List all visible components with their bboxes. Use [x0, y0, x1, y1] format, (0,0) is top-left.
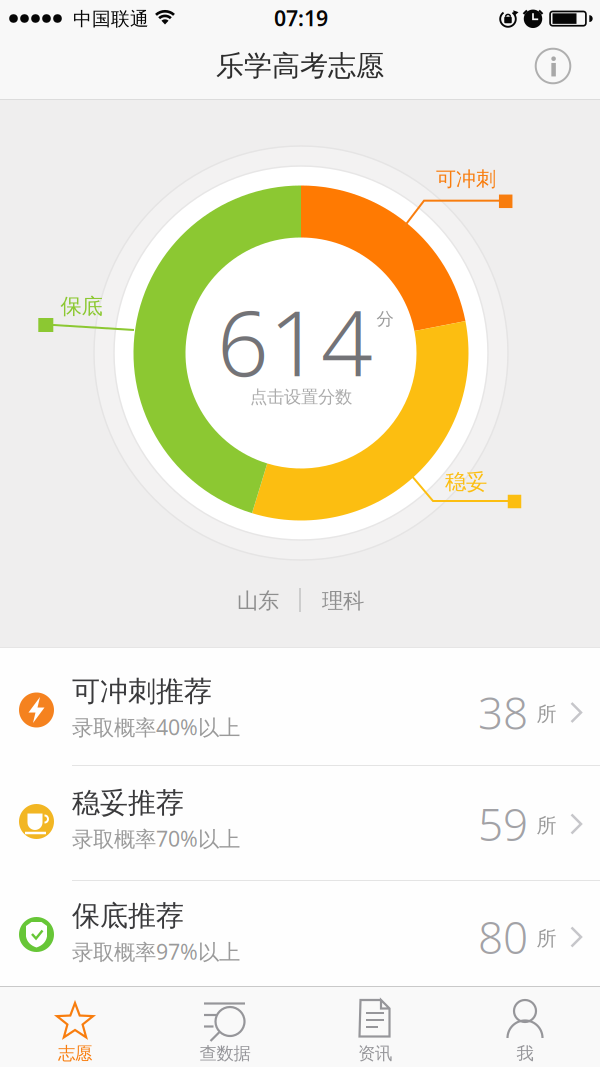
- staticText: 所: [536, 813, 556, 838]
- button[interactable]: 查数据: [150, 987, 300, 1067]
- staticText: 38: [478, 683, 528, 742]
- staticText: 资讯: [358, 1043, 392, 1064]
- staticText: 理科: [322, 588, 364, 614]
- staticText: 分: [376, 308, 393, 330]
- staticText: 查数据: [199, 1043, 250, 1064]
- staticText: 录取概率40%以上: [72, 713, 240, 741]
- staticText: 所: [536, 702, 556, 726]
- button[interactable]: 保底推荐: [0, 880, 600, 986]
- staticText: 志愿: [58, 1043, 92, 1064]
- staticText: 录取概率70%以上: [72, 824, 240, 853]
- button[interactable]: 可冲刺推荐: [0, 648, 600, 765]
- button[interactable]: [531, 44, 575, 88]
- staticText: 所: [536, 926, 556, 951]
- staticText: 点击设置分数: [250, 386, 352, 408]
- staticText: 80: [478, 908, 528, 966]
- button[interactable]: 614: [186, 238, 416, 468]
- staticText: 乐学高考志愿: [216, 49, 384, 83]
- staticText: 可冲刺: [436, 167, 496, 191]
- button[interactable]: 稳妥推荐: [0, 765, 600, 880]
- staticText: 稳妥推荐: [72, 786, 184, 820]
- staticText: 我: [516, 1043, 533, 1064]
- staticText: 山东: [237, 588, 279, 614]
- button[interactable]: 志愿: [0, 987, 150, 1067]
- staticText: 录取概率97%以上: [72, 937, 240, 966]
- staticText: 可冲刺推荐: [72, 674, 212, 709]
- staticText: 稳妥: [445, 469, 487, 495]
- staticText: 614: [217, 281, 373, 401]
- staticText: 中国联通: [73, 7, 149, 30]
- button[interactable]: 我: [450, 987, 600, 1067]
- staticText: 保底推荐: [72, 899, 184, 933]
- staticText: 保底: [60, 293, 102, 320]
- button[interactable]: 资讯: [300, 987, 450, 1067]
- staticText: 59: [478, 795, 528, 853]
- staticText: 07:19: [274, 4, 328, 32]
